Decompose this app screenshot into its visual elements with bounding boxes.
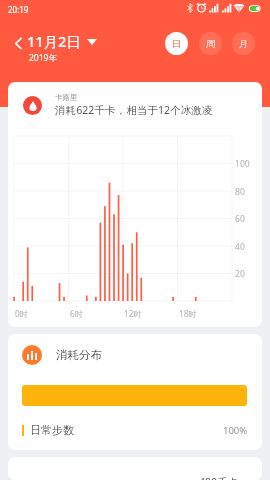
button[interactable]: 11月2日 [27, 31, 91, 63]
staticText: 周 [206, 38, 216, 50]
button[interactable]: 卡路里 [8, 82, 262, 128]
staticText: 卡路里 [55, 93, 78, 102]
button[interactable]: 日常步数 [22, 419, 248, 441]
staticText: 11月2日 [27, 31, 81, 51]
staticText: 6时 [70, 308, 84, 319]
staticText: 20 [235, 268, 245, 280]
staticText: 100 [235, 158, 250, 170]
staticText: 60 [235, 213, 245, 225]
staticText: 消耗622千卡，相当于12个冰激凌 [55, 103, 213, 117]
button[interactable]: 周 [199, 32, 222, 55]
staticText: 400千卡 [199, 475, 239, 480]
staticText: 40 [235, 241, 245, 253]
staticText: 日常步数 [30, 423, 74, 437]
button[interactable]: 月 [232, 32, 255, 55]
button[interactable]: Back [8, 33, 28, 53]
staticText: 80 [235, 186, 245, 198]
staticText: 20:19 [8, 4, 29, 15]
staticText: 12时 [124, 308, 142, 319]
staticText: 18时 [179, 308, 197, 319]
button[interactable]: 日 [165, 32, 188, 55]
staticText: 100% [223, 424, 248, 437]
button[interactable]: 消耗分布 [8, 334, 262, 376]
staticText: 日 [172, 38, 182, 50]
staticText: 月 [239, 38, 249, 50]
staticText: 2019年 [29, 52, 57, 64]
staticText: 0时 [15, 308, 29, 319]
staticText: 消耗分布 [56, 348, 102, 362]
